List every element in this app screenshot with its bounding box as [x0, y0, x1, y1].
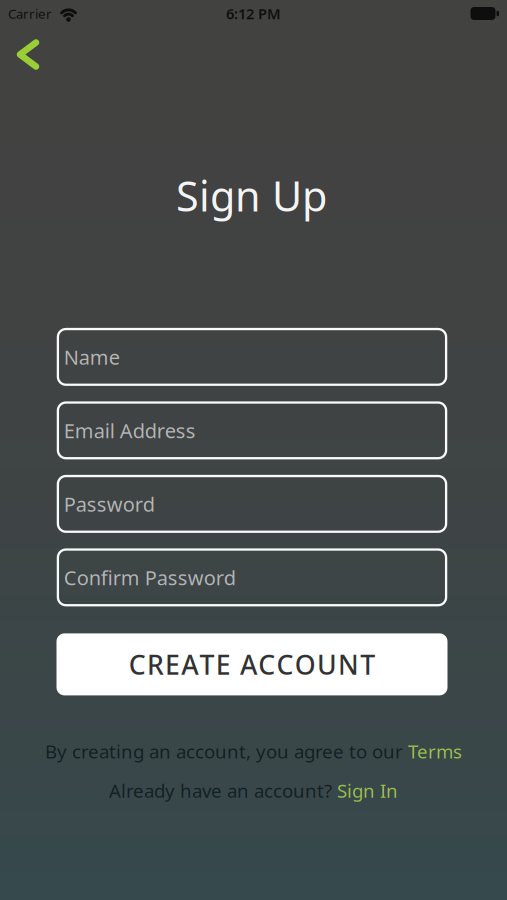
staticText: O: [295, 647, 316, 682]
staticText: Sign Up: [176, 168, 327, 223]
button[interactable]: Sign In: [337, 778, 398, 803]
button[interactable]: Create Account: [56, 633, 447, 695]
staticText: Confirm Password: [64, 564, 236, 591]
staticText: T: [360, 647, 375, 682]
staticText: U: [317, 647, 337, 682]
staticText: E: [216, 647, 231, 682]
staticText: C: [129, 647, 146, 682]
staticText: C: [276, 647, 293, 682]
button[interactable]: Terms: [408, 739, 462, 764]
staticText: A: [181, 647, 198, 682]
button[interactable]: Password: [57, 475, 447, 533]
staticText: Terms: [408, 739, 462, 764]
staticText: C: [258, 647, 275, 682]
staticText: Carrier: [8, 5, 52, 22]
staticText: R: [147, 647, 164, 682]
staticText: Already have an account?: [109, 778, 337, 803]
button[interactable]: Back: [16, 39, 40, 70]
button[interactable]: Confirm Password: [57, 548, 447, 606]
staticText: By creating an account, you agree to our: [45, 739, 408, 764]
staticText: T: [199, 647, 214, 682]
staticText: Name: [64, 344, 120, 370]
staticText: 6:12 PM: [226, 4, 281, 23]
staticText: Password: [64, 491, 155, 517]
staticText: E: [165, 647, 180, 682]
staticText: A: [240, 647, 257, 682]
staticText: Email Address: [64, 417, 196, 444]
staticText: N: [338, 647, 359, 682]
button[interactable]: Email Address: [57, 401, 447, 459]
staticText: Sign In: [337, 778, 398, 803]
button[interactable]: Name: [57, 328, 447, 386]
